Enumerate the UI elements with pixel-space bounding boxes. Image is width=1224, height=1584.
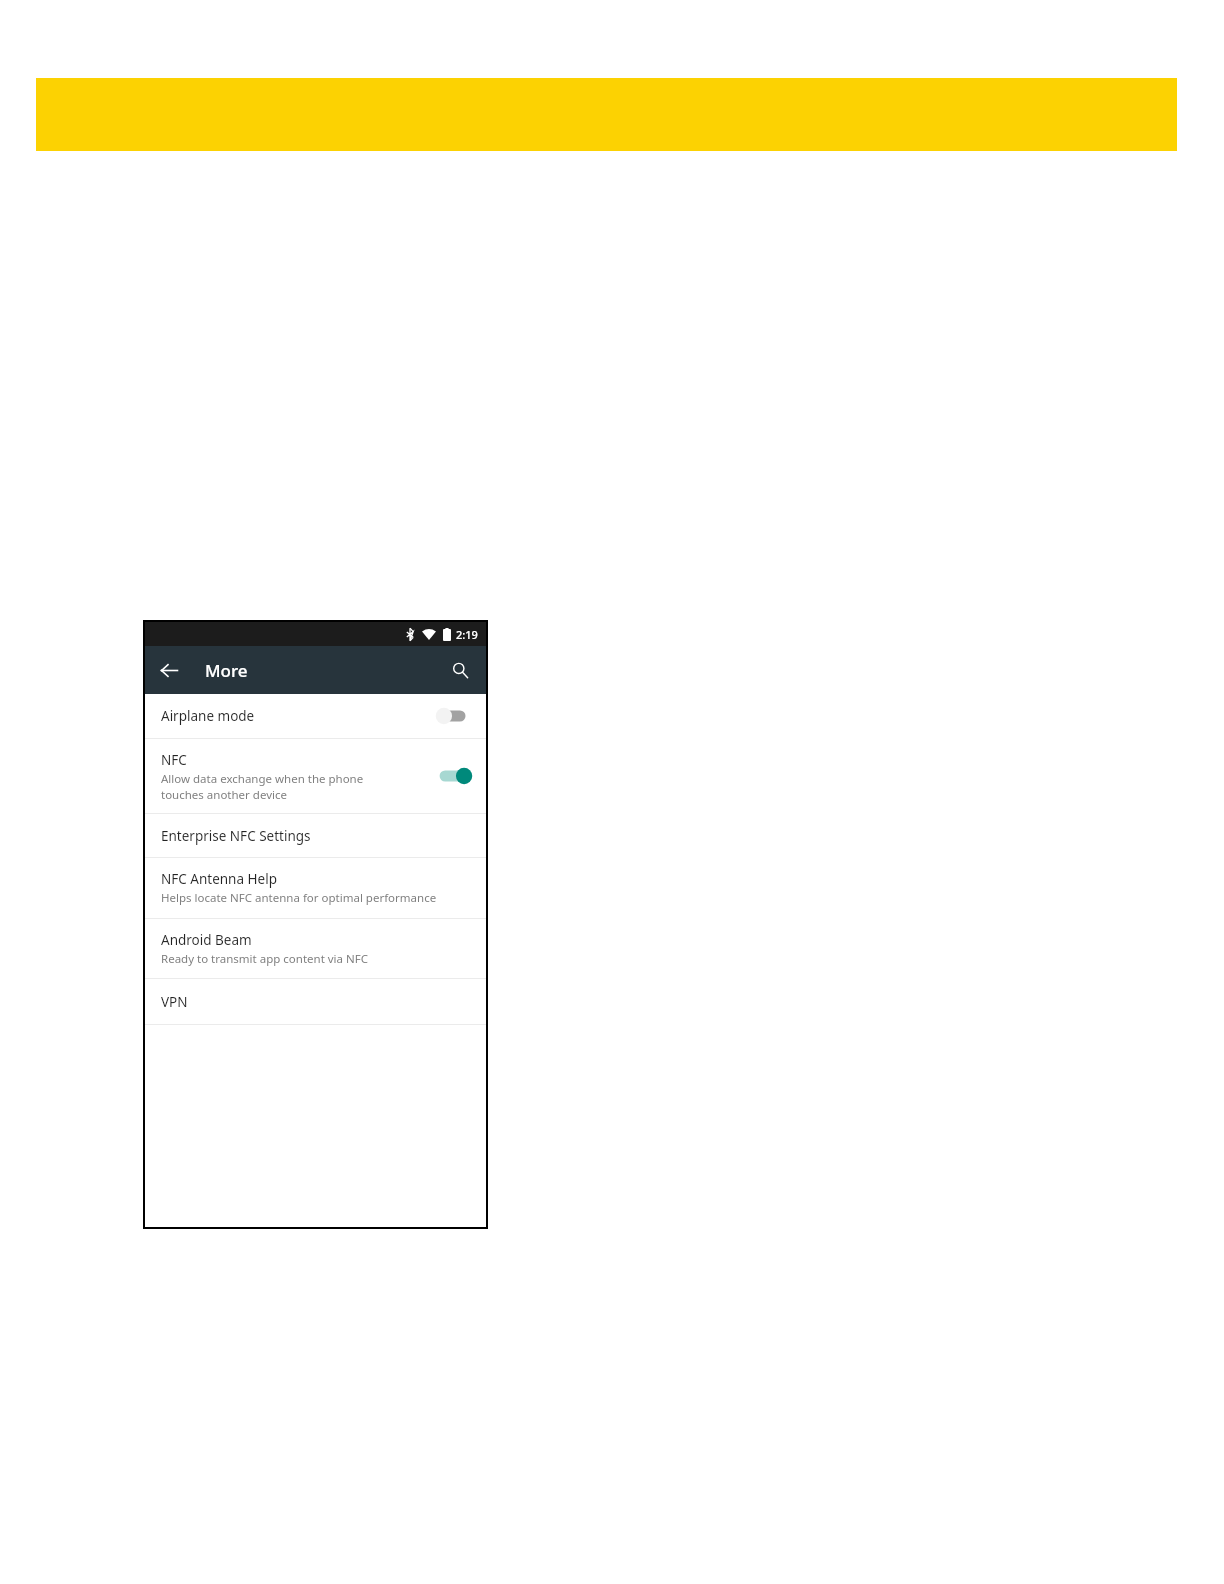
button[interactable]: VPN	[145, 979, 486, 1024]
button[interactable]: Android Beam	[145, 919, 486, 978]
button[interactable]: Search	[440, 650, 480, 690]
staticText: VPN	[161, 993, 188, 1011]
staticText: Helps locate NFC antenna for optimal per…	[161, 890, 437, 906]
staticText: Android Beam	[161, 931, 252, 949]
button[interactable]: Off	[436, 704, 472, 728]
staticText: Enterprise NFC Settings	[161, 827, 311, 845]
staticText: Airplane mode	[161, 707, 255, 725]
staticText: More	[205, 659, 248, 682]
button[interactable]: NFC	[145, 739, 486, 813]
staticText: 2:19	[456, 627, 478, 642]
button[interactable]: Airplane mode	[145, 694, 486, 738]
staticText: Allow data exchange when the phone touch…	[161, 771, 364, 802]
staticText: Ready to transmit app content via NFC	[161, 951, 368, 967]
button[interactable]: NFC Antenna Help	[145, 858, 486, 918]
button[interactable]: On	[436, 764, 472, 788]
staticText: NFC	[161, 751, 187, 769]
staticText: NFC Antenna Help	[161, 870, 277, 888]
button[interactable]: Back	[149, 650, 189, 690]
button[interactable]: Enterprise NFC Settings	[145, 814, 486, 857]
